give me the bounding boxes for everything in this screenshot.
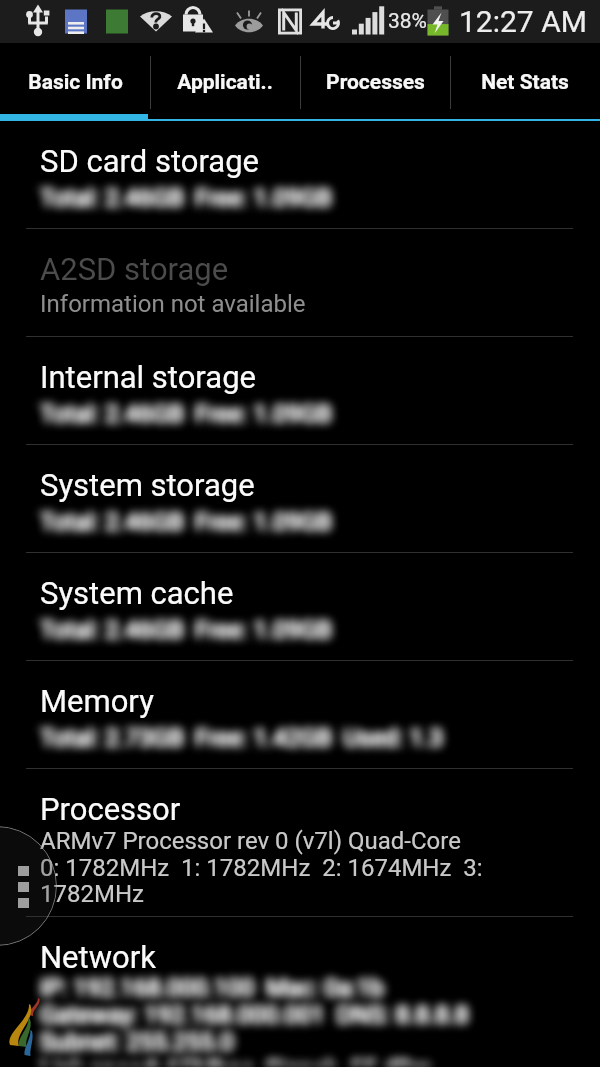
button[interactable]: Quick menu (0, 826, 57, 946)
staticText: ARMv7 Processor rev 0 (v7l) Quad-Core 0:… (40, 827, 488, 907)
staticText: Memory (40, 683, 154, 719)
staticText: Internal storage (40, 359, 256, 395)
button[interactable]: Net Stats (450, 43, 600, 121)
staticText: Information not available (40, 290, 306, 318)
staticText: 12:27 AM (459, 4, 587, 39)
staticText: Network (40, 939, 156, 975)
staticText: Processor (40, 791, 181, 827)
staticText: IP: 192.168.000.100 Mac: 0a:1b Gateway: … (40, 974, 469, 1066)
staticText: Total: 2.46GB Free: 1.09GB (40, 184, 332, 212)
button[interactable]: Processes (300, 43, 450, 121)
staticText: Total: 2.46GB Free: 1.09GB (40, 508, 332, 536)
button[interactable]: Network (0, 917, 600, 1067)
staticText: A2SD storage (40, 251, 229, 287)
button[interactable]: Basic Info (0, 43, 150, 121)
staticText: Net Stats (481, 70, 569, 95)
button[interactable]: A2SD storage (0, 229, 600, 337)
staticText: IP: 192.168.000.100 Mac: 0a:1b Gateway: … (40, 974, 469, 1066)
staticText: Total: 2.73GB Free: 1.42GB Used: 1.3 (40, 724, 443, 752)
staticText: Total: 2.46GB Free: 1.09GB (40, 508, 332, 536)
button[interactable]: Memory (0, 661, 600, 769)
staticText: Total: 2.46GB Free: 1.09GB (40, 184, 332, 212)
staticText: Total: 2.46GB Free: 1.09GB (40, 400, 332, 428)
button[interactable]: Applicati.. (150, 43, 300, 121)
staticText: Basic Info (28, 70, 123, 95)
staticText: SD card storage (40, 143, 260, 179)
staticText: Total: 2.46GB Free: 1.09GB (40, 616, 332, 644)
staticText: System cache (40, 575, 234, 611)
staticText: Applicati.. (177, 70, 273, 95)
button[interactable]: System cache (0, 553, 600, 661)
button[interactable]: Processor (0, 769, 600, 917)
staticText: Processes (326, 70, 425, 95)
staticText: Total: 2.46GB Free: 1.09GB (40, 616, 332, 644)
staticText: Total: 2.73GB Free: 1.42GB Used: 1.3 (40, 724, 443, 752)
button[interactable]: SD card storage (0, 121, 600, 229)
button[interactable]: Internal storage (0, 337, 600, 445)
button[interactable]: System storage (0, 445, 600, 553)
staticText: System storage (40, 467, 255, 503)
staticText: 38% (388, 9, 427, 34)
staticText: Total: 2.46GB Free: 1.09GB (40, 400, 332, 428)
